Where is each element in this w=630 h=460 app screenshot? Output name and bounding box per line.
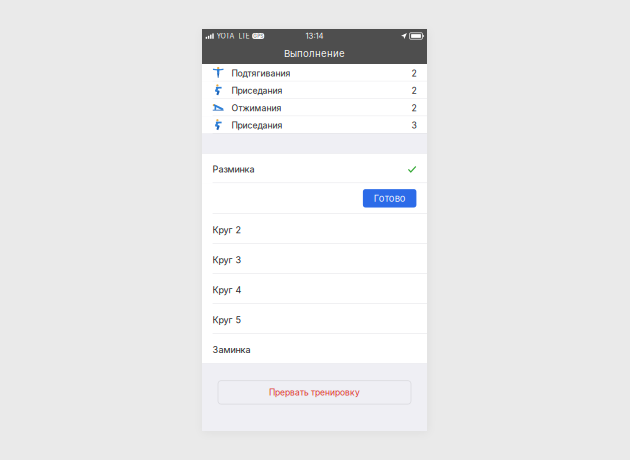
button[interactable]: Круг 2 bbox=[202, 214, 427, 244]
staticText: 2 bbox=[411, 103, 416, 113]
button[interactable]: Прервать тренировку bbox=[218, 381, 411, 404]
staticText: YOTA bbox=[217, 32, 235, 40]
staticText: Разминка bbox=[213, 164, 255, 175]
staticText: Готово bbox=[374, 193, 406, 204]
staticText: Приседания bbox=[231, 85, 282, 96]
staticText: Круг 4 bbox=[213, 284, 242, 295]
staticText: Выполнение bbox=[284, 48, 345, 59]
staticText: Круг 3 bbox=[213, 254, 242, 265]
button[interactable]: Приседания bbox=[202, 116, 427, 134]
staticText: Заминка bbox=[213, 344, 251, 355]
button[interactable]: Круг 3 bbox=[202, 244, 427, 274]
staticText: Прервать тренировку bbox=[269, 387, 360, 397]
staticText: Отжимания bbox=[231, 103, 281, 113]
button[interactable]: Заминка bbox=[202, 334, 427, 364]
staticText: 13:14 bbox=[305, 31, 323, 41]
staticText: Круг 2 bbox=[213, 224, 242, 235]
button[interactable]: Готово bbox=[363, 189, 416, 207]
button[interactable]: Подтягивания bbox=[202, 64, 427, 81]
staticText: LTE bbox=[239, 32, 250, 40]
staticText: Приседания bbox=[231, 120, 282, 131]
button[interactable]: Круг 4 bbox=[202, 274, 427, 304]
button[interactable]: Круг 5 bbox=[202, 304, 427, 334]
staticText: 2 bbox=[411, 68, 416, 78]
button[interactable]: Приседания bbox=[202, 81, 427, 99]
staticText: Круг 5 bbox=[213, 314, 242, 325]
staticText: GPS bbox=[253, 33, 263, 39]
staticText: Подтягивания bbox=[231, 68, 290, 78]
staticText: 2 bbox=[411, 85, 416, 96]
button[interactable]: Разминка bbox=[202, 154, 427, 183]
staticText: 3 bbox=[411, 120, 416, 131]
button[interactable]: Отжимания bbox=[202, 99, 427, 116]
